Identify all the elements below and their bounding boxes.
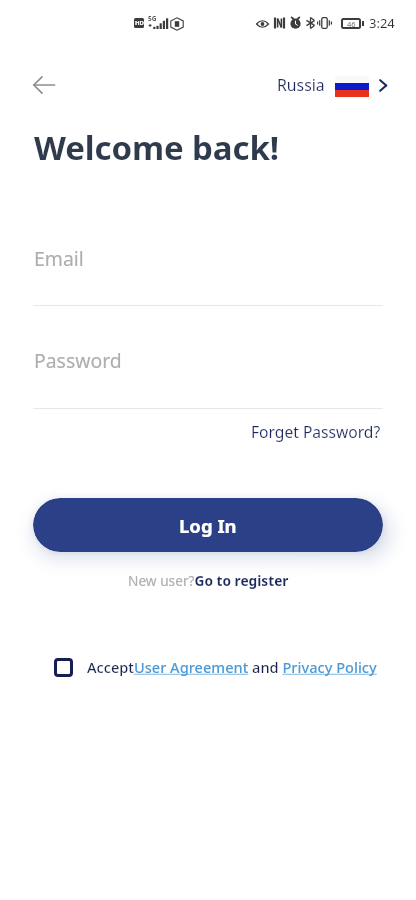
staticText: Welcome back!: [34, 125, 280, 170]
button[interactable]: Forget Password?: [251, 421, 416, 442]
staticText: 5G: [148, 14, 157, 23]
staticText: Email: [34, 245, 84, 271]
button[interactable]: New user?Go to register: [128, 571, 289, 590]
staticText: HD: [135, 19, 144, 27]
staticText: 46: [347, 19, 356, 29]
staticText: Log In: [179, 513, 237, 538]
staticText: Russia: [277, 74, 325, 96]
staticText: 3:24: [369, 14, 395, 32]
button[interactable]: Log In: [33, 498, 383, 552]
staticText: Password: [34, 347, 122, 373]
button[interactable]: Accept agreement checkbox: [54, 658, 73, 677]
button[interactable]: Russia: [277, 70, 388, 100]
button[interactable]: Back: [26, 67, 62, 103]
button[interactable]: AcceptUser Agreement and Privacy Policy: [87, 657, 377, 677]
